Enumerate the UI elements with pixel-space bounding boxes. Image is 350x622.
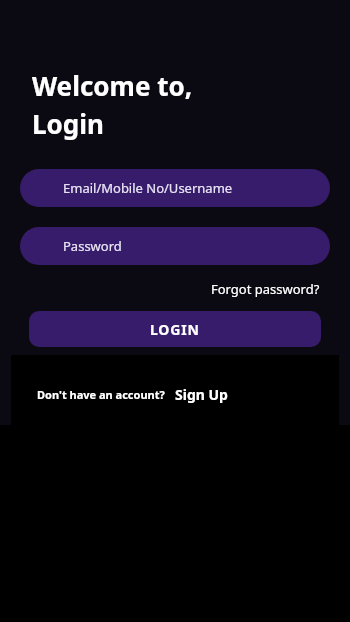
button[interactable]: LOGIN (29, 311, 321, 347)
staticText: Password (63, 237, 122, 255)
staticText: Don't have an account? (37, 387, 165, 402)
staticText: Login (32, 106, 104, 141)
button[interactable]: Forgot password? (209, 277, 322, 301)
staticText: Forgot password? (211, 280, 320, 298)
button[interactable]: Email/Mobile No/Username (20, 169, 330, 207)
button[interactable]: Password (20, 227, 330, 265)
staticText: LOGIN (150, 320, 200, 339)
staticText: Sign Up (175, 385, 228, 404)
staticText: Email/Mobile No/Username (63, 179, 233, 197)
staticText: Welcome to, (32, 68, 193, 103)
button[interactable]: Sign Up (173, 383, 230, 406)
